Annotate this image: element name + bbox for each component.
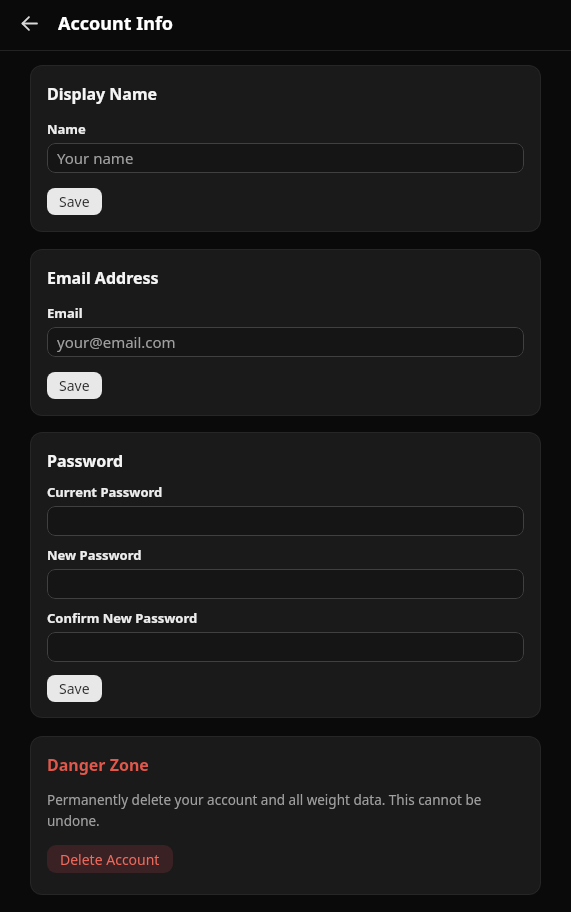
button[interactable] — [47, 506, 524, 536]
staticText: Name — [47, 120, 86, 137]
staticText: Email — [47, 304, 83, 321]
staticText: Current Password — [47, 483, 163, 500]
staticText: Confirm New Password — [47, 609, 198, 626]
button[interactable] — [17, 11, 41, 35]
staticText: New Password — [47, 546, 142, 563]
button[interactable]: Delete Account — [47, 845, 173, 873]
button[interactable]: Save — [47, 372, 102, 399]
staticText: Your name — [57, 148, 134, 168]
staticText: Password — [47, 450, 124, 471]
staticText: Account Info — [58, 11, 174, 36]
staticText: Save — [59, 376, 90, 395]
staticText: Display Name — [47, 83, 158, 104]
button[interactable]: Save — [47, 675, 102, 702]
button[interactable]: Your name — [47, 143, 524, 173]
button[interactable] — [47, 632, 524, 662]
button[interactable]: Save — [47, 188, 102, 215]
staticText: your@email.com — [57, 332, 176, 352]
button[interactable]: your@email.com — [47, 327, 524, 357]
staticText: Email Address — [47, 267, 159, 288]
staticText: Danger Zone — [47, 754, 149, 775]
staticText: Save — [59, 192, 90, 211]
staticText: Delete Account — [60, 850, 160, 869]
staticText: Permanently delete your account and all … — [47, 791, 482, 830]
button[interactable] — [47, 569, 524, 599]
staticText: Save — [59, 679, 90, 698]
